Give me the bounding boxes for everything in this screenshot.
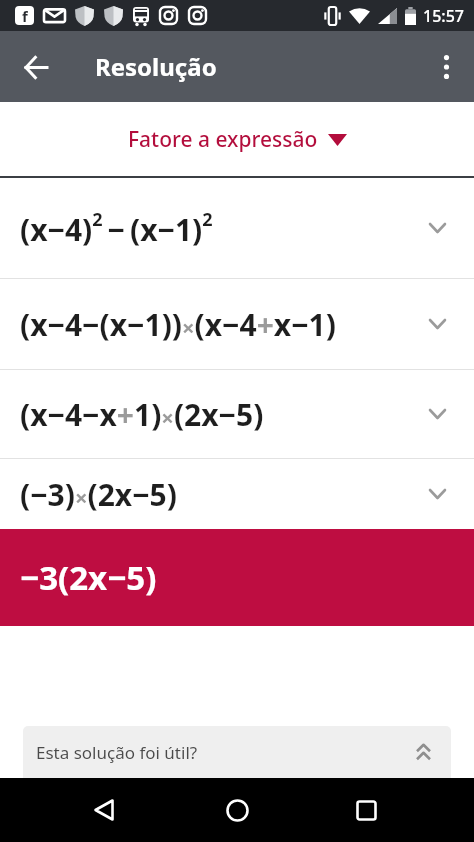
staticText: (x−4−(x−1))×(x−4+x−1) [20, 304, 336, 345]
staticText: −3(2x−5) [20, 555, 157, 600]
button[interactable]: (x−4−x+1)×(2x−5) [0, 370, 474, 458]
button[interactable]: (x−4)2 − (x−1)2 [0, 178, 474, 278]
button[interactable] [215, 788, 259, 832]
button[interactable]: Fatore a expressão [0, 102, 474, 176]
staticText: (−3)×(2x−5) [20, 474, 177, 515]
staticText: Fatore a expressão [128, 125, 318, 154]
staticText: Resolução [95, 50, 217, 83]
staticText: (x−4)2 − (x−1)2 [20, 207, 213, 249]
button[interactable]: (−3)×(2x−5) [0, 459, 474, 529]
staticText: Esta solução foi útil? [36, 741, 198, 764]
staticText: (x−4−x+1)×(2x−5) [20, 394, 264, 435]
button[interactable] [422, 43, 470, 91]
button[interactable]: Esta solução foi útil? [23, 726, 451, 778]
button[interactable] [344, 788, 388, 832]
staticText: f [22, 6, 28, 25]
button[interactable] [82, 788, 126, 832]
button[interactable] [8, 39, 64, 95]
staticText: 15:57 [423, 5, 464, 27]
button[interactable]: (x−4−(x−1))×(x−4+x−1) [0, 279, 474, 369]
